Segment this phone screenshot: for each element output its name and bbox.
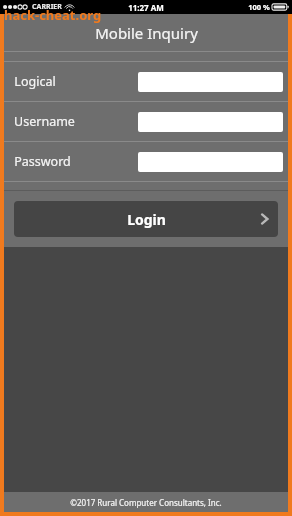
button[interactable]: Password (4, 142, 288, 181)
staticText: Logical (14, 73, 56, 90)
button[interactable]: Username (4, 102, 288, 141)
staticText: Login (127, 210, 166, 229)
button[interactable]: Logical (4, 62, 288, 101)
staticText: Mobile Inquiry (95, 23, 198, 43)
button[interactable]: Login (14, 201, 278, 237)
staticText: 100 % (248, 2, 270, 12)
button[interactable] (138, 72, 283, 92)
staticText: 11:27 AM (128, 2, 164, 13)
staticText: CARRIER (32, 2, 62, 12)
staticText: ©2017 Rural Computer Consultants, Inc. (70, 497, 222, 508)
staticText: Username (14, 113, 75, 130)
button[interactable] (138, 152, 283, 172)
button[interactable] (138, 112, 283, 132)
staticText: hack-cheat.org (4, 6, 102, 24)
staticText: Password (14, 153, 71, 170)
